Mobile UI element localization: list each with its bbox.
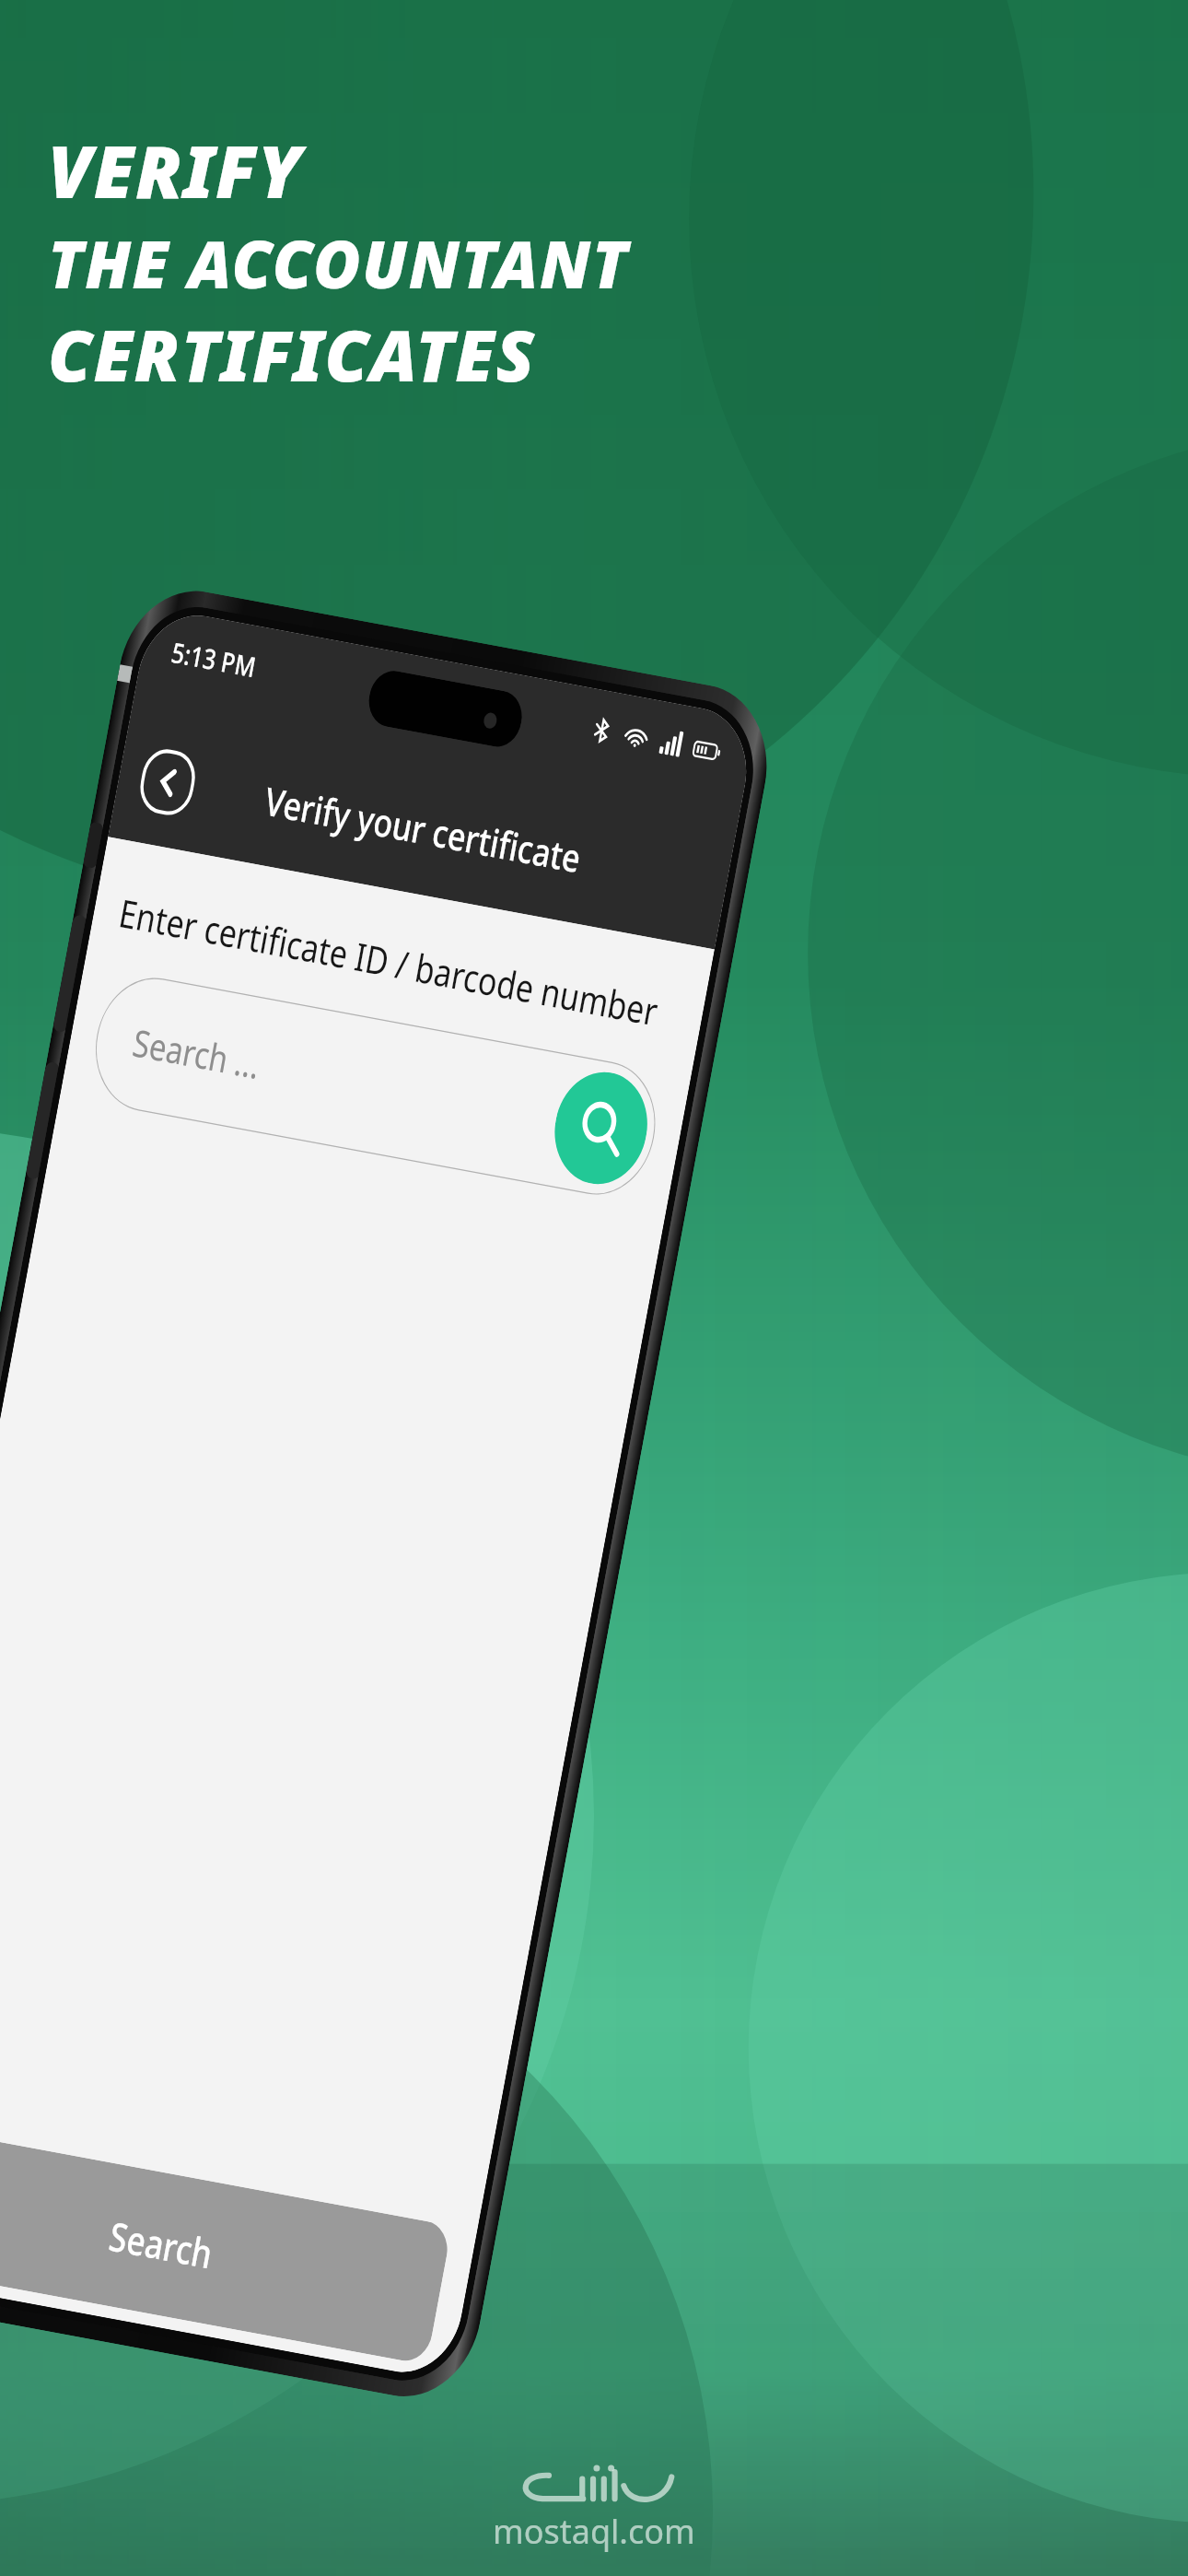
staticText: mostaql.com — [493, 2509, 695, 2554]
button[interactable]: Search — [546, 1064, 656, 1192]
staticText: 5:13 PM — [169, 633, 259, 685]
staticText: Enter certificate ID / barcode number — [115, 886, 662, 1038]
staticText: Search ... — [129, 1017, 265, 1090]
button[interactable]: Search ... — [85, 969, 666, 1204]
staticText: THE ACCOUNTANT — [48, 219, 629, 307]
button[interactable]: Back — [135, 744, 201, 820]
button[interactable]: Search — [0, 2123, 452, 2365]
staticText: Search — [105, 2209, 218, 2281]
staticText: VERIFY — [48, 122, 303, 219]
staticText: CERTIFICATES — [48, 307, 536, 403]
staticText: Verify your certificate — [261, 774, 585, 885]
